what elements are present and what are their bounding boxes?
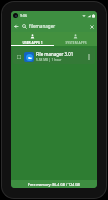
- staticText: Free memory: 86.4 GB / 124 GB: [28, 182, 80, 187]
- button[interactable]: Clear search: [86, 21, 97, 32]
- button[interactable]: More options: [84, 52, 93, 61]
- staticText: USER APPS 1: [22, 40, 43, 44]
- button[interactable]: Select app: [15, 53, 23, 61]
- button[interactable]: Back: [11, 21, 22, 32]
- button[interactable]: Select app: [13, 48, 95, 64]
- staticText: SYSTEM APPS: [65, 40, 87, 44]
- button[interactable]: SYSTEM APPS: [54, 32, 97, 46]
- staticText: filemanager: [29, 23, 86, 29]
- button[interactable]: USER APPS 1: [11, 32, 54, 46]
- button[interactable]: Free memory: 86.4 GB / 124 GB: [11, 180, 97, 188]
- staticText: 5.58 MB | 1 hour: [36, 58, 62, 62]
- staticText: 9:06: [20, 13, 28, 18]
- staticText: File manager 3.01: [36, 51, 74, 57]
